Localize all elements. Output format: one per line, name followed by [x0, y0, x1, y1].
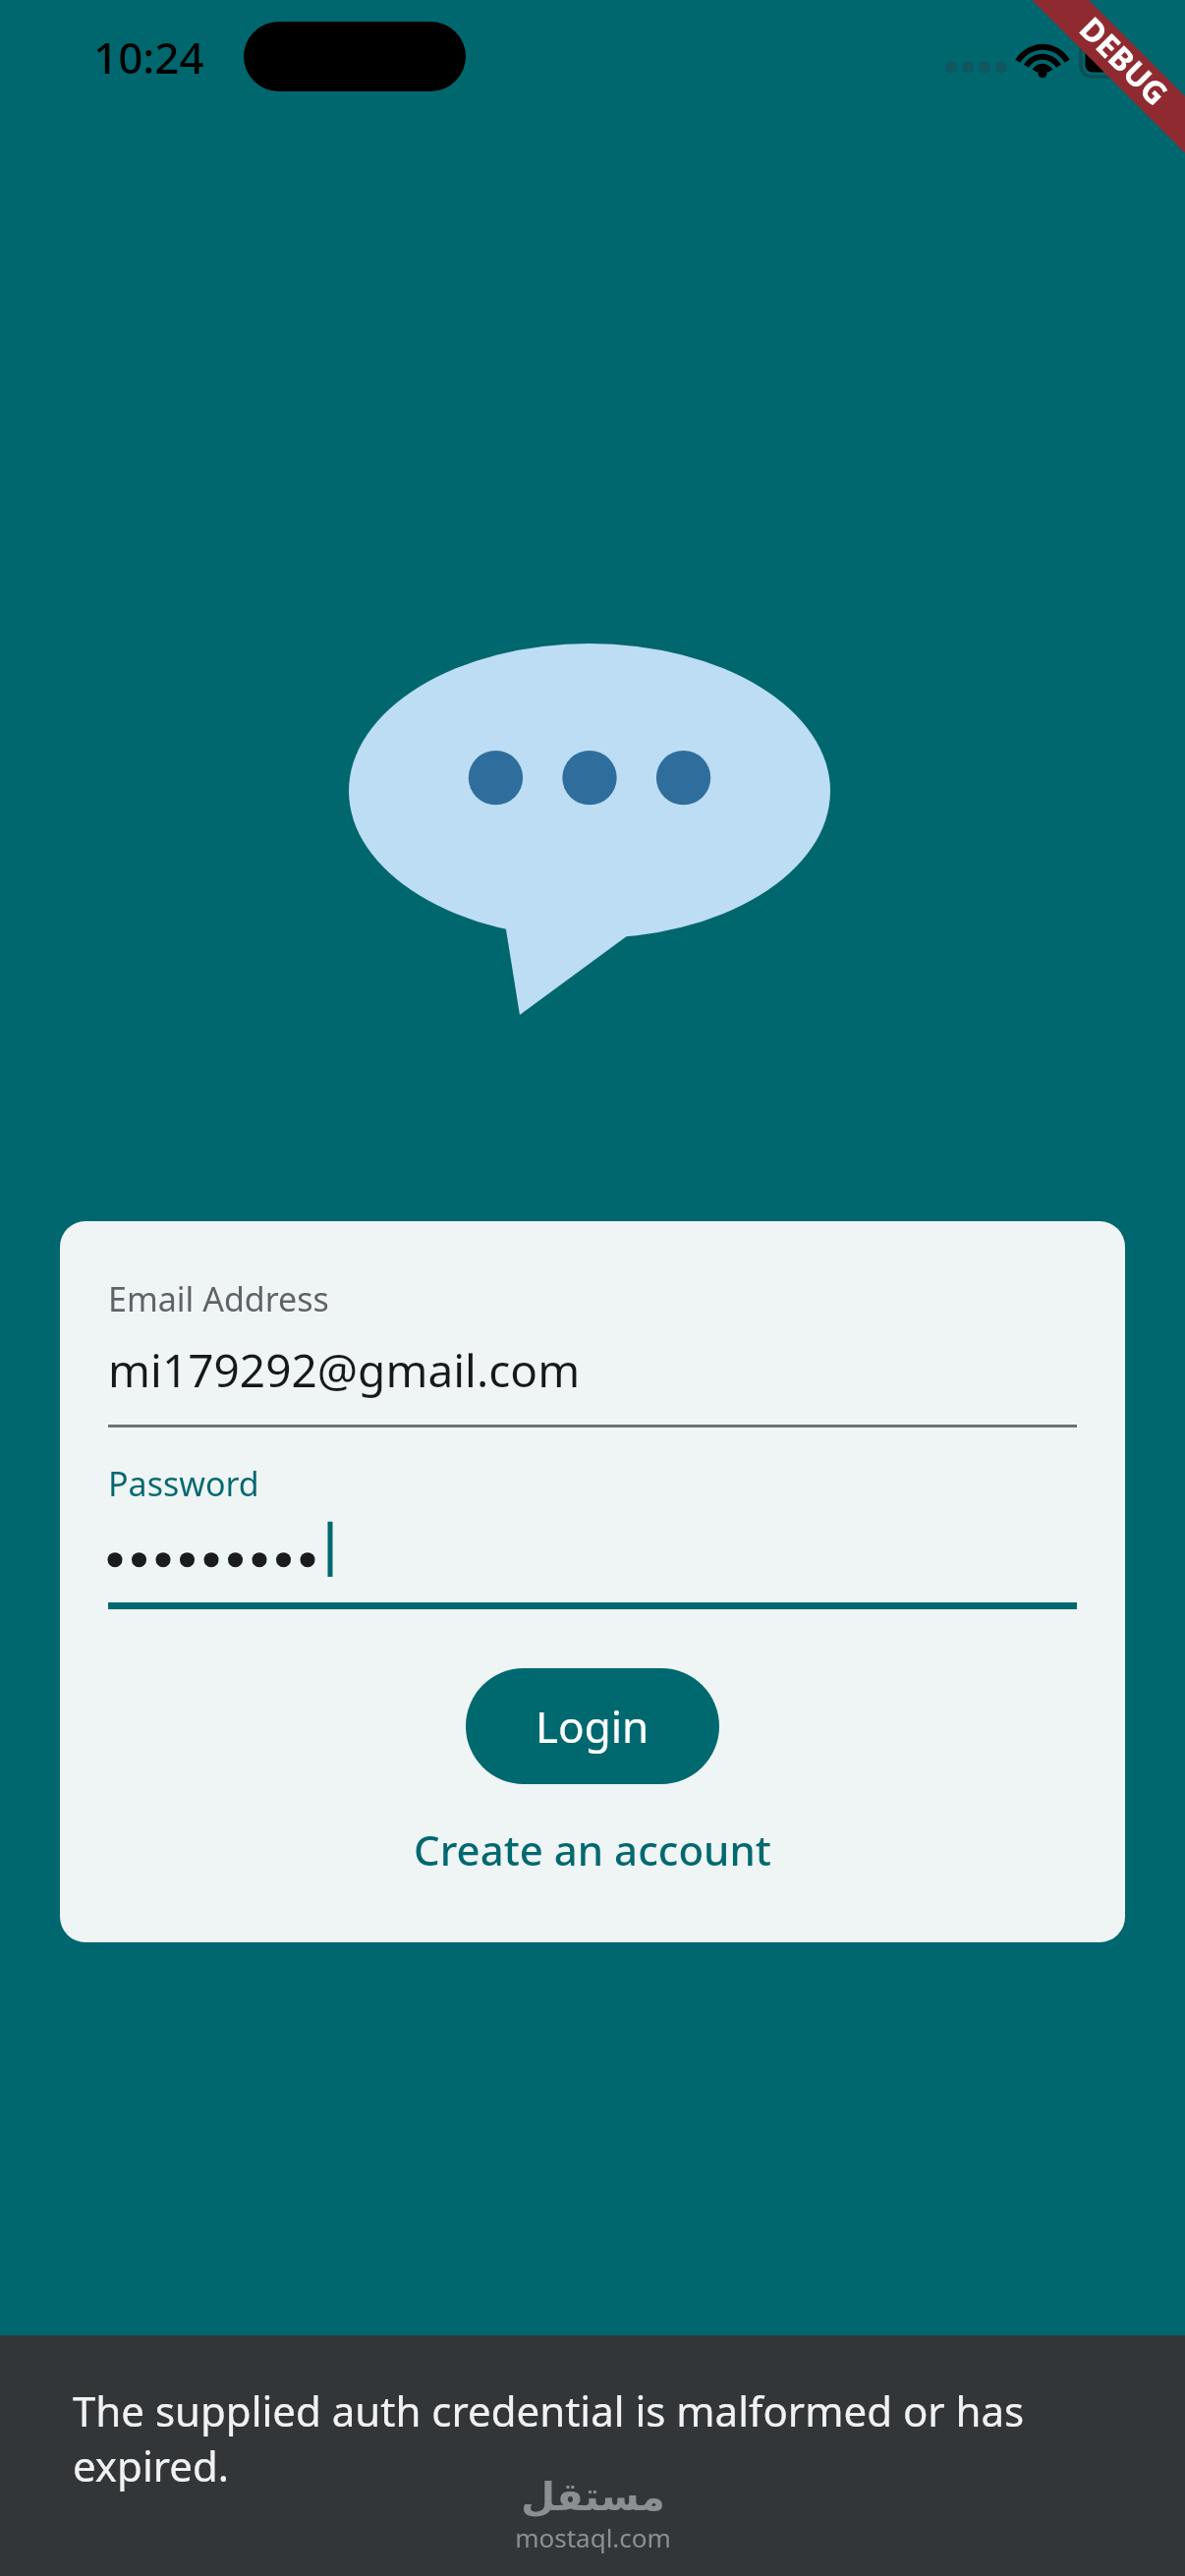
button[interactable]	[108, 1516, 1077, 1587]
button[interactable]: mi179292@gmail.com	[108, 1339, 1077, 1401]
staticText: 10:24	[93, 28, 204, 86]
button[interactable]: Login	[466, 1668, 719, 1784]
other: Debug banner	[992, 0, 1185, 193]
button[interactable]: Create an account	[398, 1812, 787, 1887]
staticText: The supplied auth credential is malforme…	[73, 2382, 1077, 2493]
staticText: Create an account	[414, 1821, 771, 1877]
staticText: mostaql.com	[515, 2520, 671, 2554]
staticText: DEBUG	[1071, 7, 1178, 114]
staticText: Login	[536, 1697, 649, 1756]
staticText: مستقل	[521, 2474, 665, 2520]
staticText: mi179292@gmail.com	[108, 1339, 581, 1401]
staticText: Email Address	[108, 1276, 329, 1321]
staticText: Password	[108, 1461, 259, 1506]
